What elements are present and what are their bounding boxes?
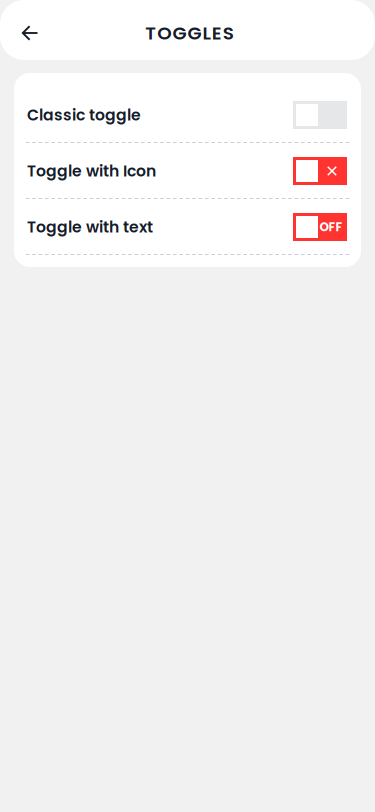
button[interactable]: Back — [10, 13, 50, 53]
staticText: Toggle with Icon — [27, 160, 156, 182]
button[interactable]: Classic toggle — [14, 87, 361, 143]
staticText: Toggle with text — [27, 216, 153, 238]
staticText: OFF — [319, 219, 342, 235]
staticText: Classic toggle — [27, 104, 141, 126]
button[interactable]: Toggle with text — [14, 199, 361, 255]
staticText: TOGGLES — [145, 20, 234, 46]
button[interactable]: Toggle with Icon — [14, 143, 361, 199]
